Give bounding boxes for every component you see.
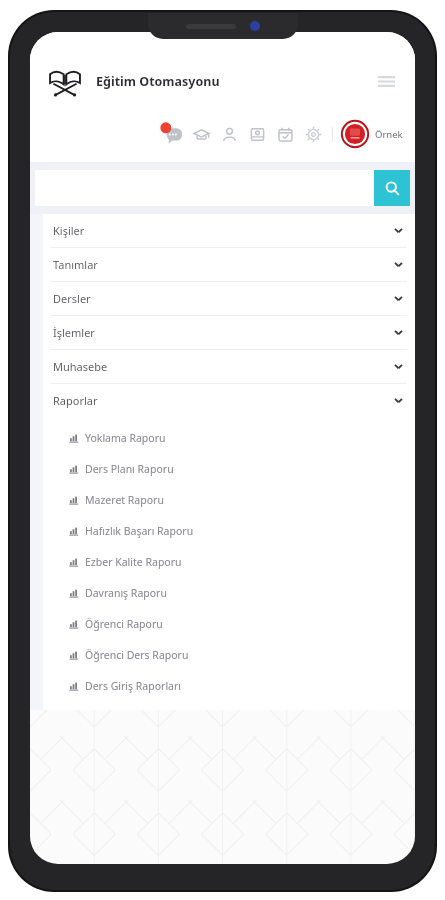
button[interactable]: Kişiler <box>217 122 241 146</box>
button[interactable]: Ders Planı Raporu <box>43 453 415 484</box>
button[interactable]: Profil <box>341 120 369 148</box>
button[interactable]: Mesajlar <box>159 121 185 147</box>
button[interactable]: Ders Giriş Raporları <box>43 670 415 701</box>
button[interactable]: Takvim <box>273 122 297 146</box>
button[interactable]: Mazeret Raporu <box>43 484 415 515</box>
staticText: Mazeret Raporu <box>85 493 164 507</box>
button[interactable]: Dersler <box>245 122 269 146</box>
button[interactable]: Hafızlık Başarı Raporu <box>43 515 415 546</box>
staticText: Yoklama Raporu <box>85 431 166 445</box>
button[interactable]: Davranış Raporu <box>43 577 415 608</box>
button[interactable]: Tanımlar <box>43 248 415 281</box>
staticText: Örnek <box>375 128 403 141</box>
staticText: Davranış Raporu <box>85 586 167 600</box>
button[interactable]: Muhasebe <box>43 350 415 383</box>
button[interactable]: Logo <box>44 60 86 102</box>
staticText: Ders Planı Raporu <box>85 462 174 476</box>
button[interactable]: Öğrenci Raporu <box>43 608 415 639</box>
staticText: İşlemler <box>53 325 95 340</box>
staticText: Ezber Kalite Raporu <box>85 555 182 569</box>
staticText: Hafızlık Başarı Raporu <box>85 524 194 538</box>
staticText: Eğitim Otomasyonu <box>96 73 220 90</box>
button[interactable]: Mezuniyet <box>189 122 213 146</box>
button[interactable]: Ezber Kalite Raporu <box>43 546 415 577</box>
button[interactable]: Menu <box>371 66 401 96</box>
staticText: Öğrenci Ders Raporu <box>85 648 189 662</box>
button[interactable]: Dersler <box>43 282 415 315</box>
staticText: Dersler <box>53 291 91 306</box>
staticText: Öğrenci Raporu <box>85 617 163 631</box>
staticText: Ders Giriş Raporları <box>85 679 182 693</box>
button[interactable]: Kişiler <box>43 214 415 247</box>
staticText: Tanımlar <box>53 257 98 272</box>
button[interactable]: İşlemler <box>43 316 415 349</box>
button[interactable]: Ayarlar <box>301 122 325 146</box>
button[interactable]: Yoklama Raporu <box>43 422 415 453</box>
staticText: Kişiler <box>53 223 85 238</box>
button[interactable]: Ara <box>374 170 410 206</box>
button[interactable]: Öğrenci Ders Raporu <box>43 639 415 670</box>
button[interactable]: Raporlar <box>43 384 415 417</box>
staticText: Muhasebe <box>53 359 108 374</box>
staticText: Raporlar <box>53 393 98 408</box>
